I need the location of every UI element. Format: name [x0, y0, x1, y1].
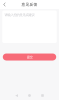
- button[interactable]: Back: [14, 91, 18, 100]
- button[interactable]: Back: [0, 0, 9, 9]
- staticText: 请输入您的意见或建议: [4, 13, 34, 17]
- button[interactable]: 提交: [3, 53, 56, 60]
- staticText: 意见反馈: [21, 2, 37, 7]
- button[interactable]: Recent apps: [40, 91, 44, 100]
- button[interactable]: Home: [27, 91, 31, 100]
- staticText: 提交: [26, 55, 32, 59]
